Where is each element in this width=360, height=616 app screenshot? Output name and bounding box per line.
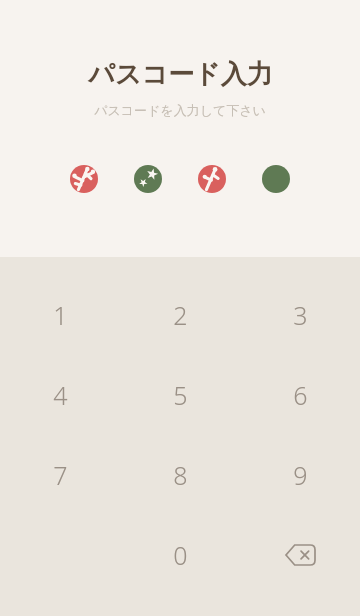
button[interactable]: 7 [0, 435, 120, 515]
button[interactable]: 3 [240, 275, 360, 355]
staticText: パスコードを入力して下さい [94, 102, 266, 118]
staticText: 8 [173, 458, 188, 492]
staticText: 4 [53, 378, 68, 412]
button[interactable]: Passcode slot 4 [262, 165, 290, 193]
staticText: パスコード入力 [88, 58, 273, 91]
button[interactable]: Passcode slot 1 [70, 165, 98, 193]
staticText: 1 [53, 298, 68, 332]
staticText: 5 [173, 378, 188, 412]
button[interactable]: 2 [120, 275, 240, 355]
button[interactable]: 0 [120, 515, 240, 595]
button[interactable]: 9 [240, 435, 360, 515]
staticText: 2 [173, 298, 188, 332]
button[interactable]: 5 [120, 355, 240, 435]
staticText: 0 [173, 538, 188, 572]
staticText: 7 [53, 458, 68, 492]
button[interactable]: 1 [0, 275, 120, 355]
button[interactable]: 4 [0, 355, 120, 435]
button[interactable]: 6 [240, 355, 360, 435]
staticText: 9 [293, 458, 308, 492]
button[interactable]: Passcode slot 2 [134, 165, 162, 193]
staticText: 3 [293, 298, 308, 332]
button[interactable]: 8 [120, 435, 240, 515]
button[interactable]: Delete [240, 515, 360, 595]
button[interactable]: Passcode slot 3 [198, 165, 226, 193]
staticText: 6 [293, 378, 308, 412]
